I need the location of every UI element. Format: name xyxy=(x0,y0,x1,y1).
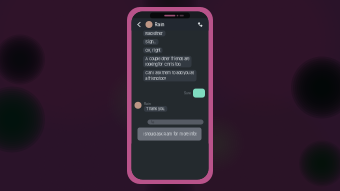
staticText: Thank you. xyxy=(146,106,165,111)
staticText: read either xyxy=(145,31,163,36)
staticText: Sigh... xyxy=(145,39,156,44)
staticText: Rain xyxy=(154,22,164,27)
staticText: a friend too? xyxy=(145,76,166,81)
staticText: looking for Chris too. xyxy=(145,62,181,67)
staticText: I should ask Ram for more info! xyxy=(142,132,196,136)
staticText: Can I ask them to add you as xyxy=(145,70,194,75)
button[interactable]: Back xyxy=(134,18,143,30)
button[interactable]: Aa xyxy=(131,119,203,124)
staticText: Ok, right xyxy=(145,48,160,53)
staticText: Sure xyxy=(184,91,191,95)
staticText: A couple other friends are xyxy=(145,56,189,61)
button[interactable]: Call xyxy=(194,19,205,30)
button[interactable]: I should ask Ram for more info! xyxy=(131,127,201,140)
staticText: Rain xyxy=(144,102,151,106)
staticText: Aa xyxy=(150,120,154,124)
